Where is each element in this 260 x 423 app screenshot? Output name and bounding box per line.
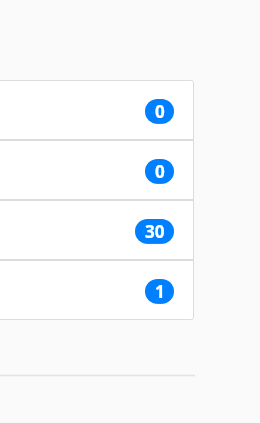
button[interactable]: Inbox [0, 82, 194, 141]
button[interactable]: Drafts [0, 142, 194, 201]
staticText: 0 [155, 100, 165, 123]
staticText: 0 [155, 160, 165, 183]
button[interactable]: Spam [0, 262, 194, 321]
staticText: 1 [155, 280, 165, 303]
staticText: 30 [145, 220, 165, 243]
button[interactable]: Sent [0, 202, 194, 261]
